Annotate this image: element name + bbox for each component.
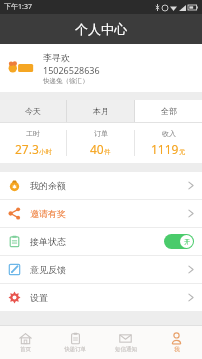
staticText: 开 [184,238,190,246]
button[interactable]: 李寻欢 [0,44,202,92]
button[interactable]: 设置 [0,284,202,311]
button[interactable]: 今天 [0,100,66,122]
staticText: 15026528636 [43,64,100,76]
staticText: 下午1:37 [4,2,32,12]
staticText: 收入 [162,129,176,138]
staticText: 短信通知 [115,346,137,353]
button[interactable]: 接单状态开关，已开启 [164,234,194,249]
staticText: 首页 [20,346,31,353]
button[interactable]: 短信通知 [100,326,151,359]
staticText: 李寻欢 [43,52,70,63]
button[interactable]: 工时 [0,123,66,163]
staticText: 意见反馈 [30,264,66,275]
staticText: 27.3 [15,141,39,157]
staticText: 我的余额 [30,180,66,191]
staticText: 接单状态 [30,236,66,247]
button[interactable]: 收入 [135,123,202,163]
staticText: 件 [104,148,111,156]
button[interactable]: 全部 [135,100,202,122]
staticText: 快递兔（徐汇） [43,77,89,85]
button[interactable]: 邀请有奖 [0,200,202,227]
staticText: 订单 [94,129,108,138]
staticText: 全部 [161,106,177,116]
staticText: 工时 [26,129,40,138]
staticText: 小时 [39,148,52,156]
staticText: 设置 [30,292,48,303]
button[interactable]: 接单状态 [0,228,202,255]
staticText: 个人中心 [75,21,127,37]
staticText: 我 [174,346,180,353]
button[interactable]: 首页 [0,326,50,359]
staticText: 1119 [151,141,179,157]
staticText: 快递订单 [64,346,86,353]
button[interactable]: 我的余额 [0,172,202,199]
staticText: 邀请有奖 [30,208,66,219]
button[interactable]: 本月 [67,100,134,122]
button[interactable]: 意见反馈 [0,256,202,283]
staticText: 今天 [25,106,41,116]
staticText: 本月 [93,106,109,116]
staticText: 元 [179,148,186,156]
button[interactable]: 快递订单 [50,326,100,359]
staticText: 40 [90,141,104,157]
button[interactable]: 订单 [67,123,134,163]
button[interactable]: 我 [151,326,202,359]
